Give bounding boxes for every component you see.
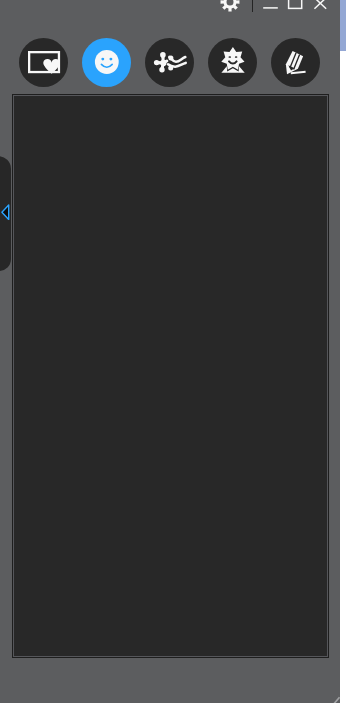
button[interactable]: Emoji [82,38,131,87]
button[interactable]: Photos [19,38,68,87]
button[interactable]: Maximize [284,0,306,13]
button[interactable]: Close [309,0,331,13]
button[interactable]: Settings [220,0,240,12]
button[interactable]: Expand panel [0,156,11,271]
button[interactable]: Effects [145,38,194,87]
button[interactable]: Minimize [259,0,281,13]
button[interactable]: Stickers [208,38,257,87]
button[interactable]: Draw [271,38,320,87]
